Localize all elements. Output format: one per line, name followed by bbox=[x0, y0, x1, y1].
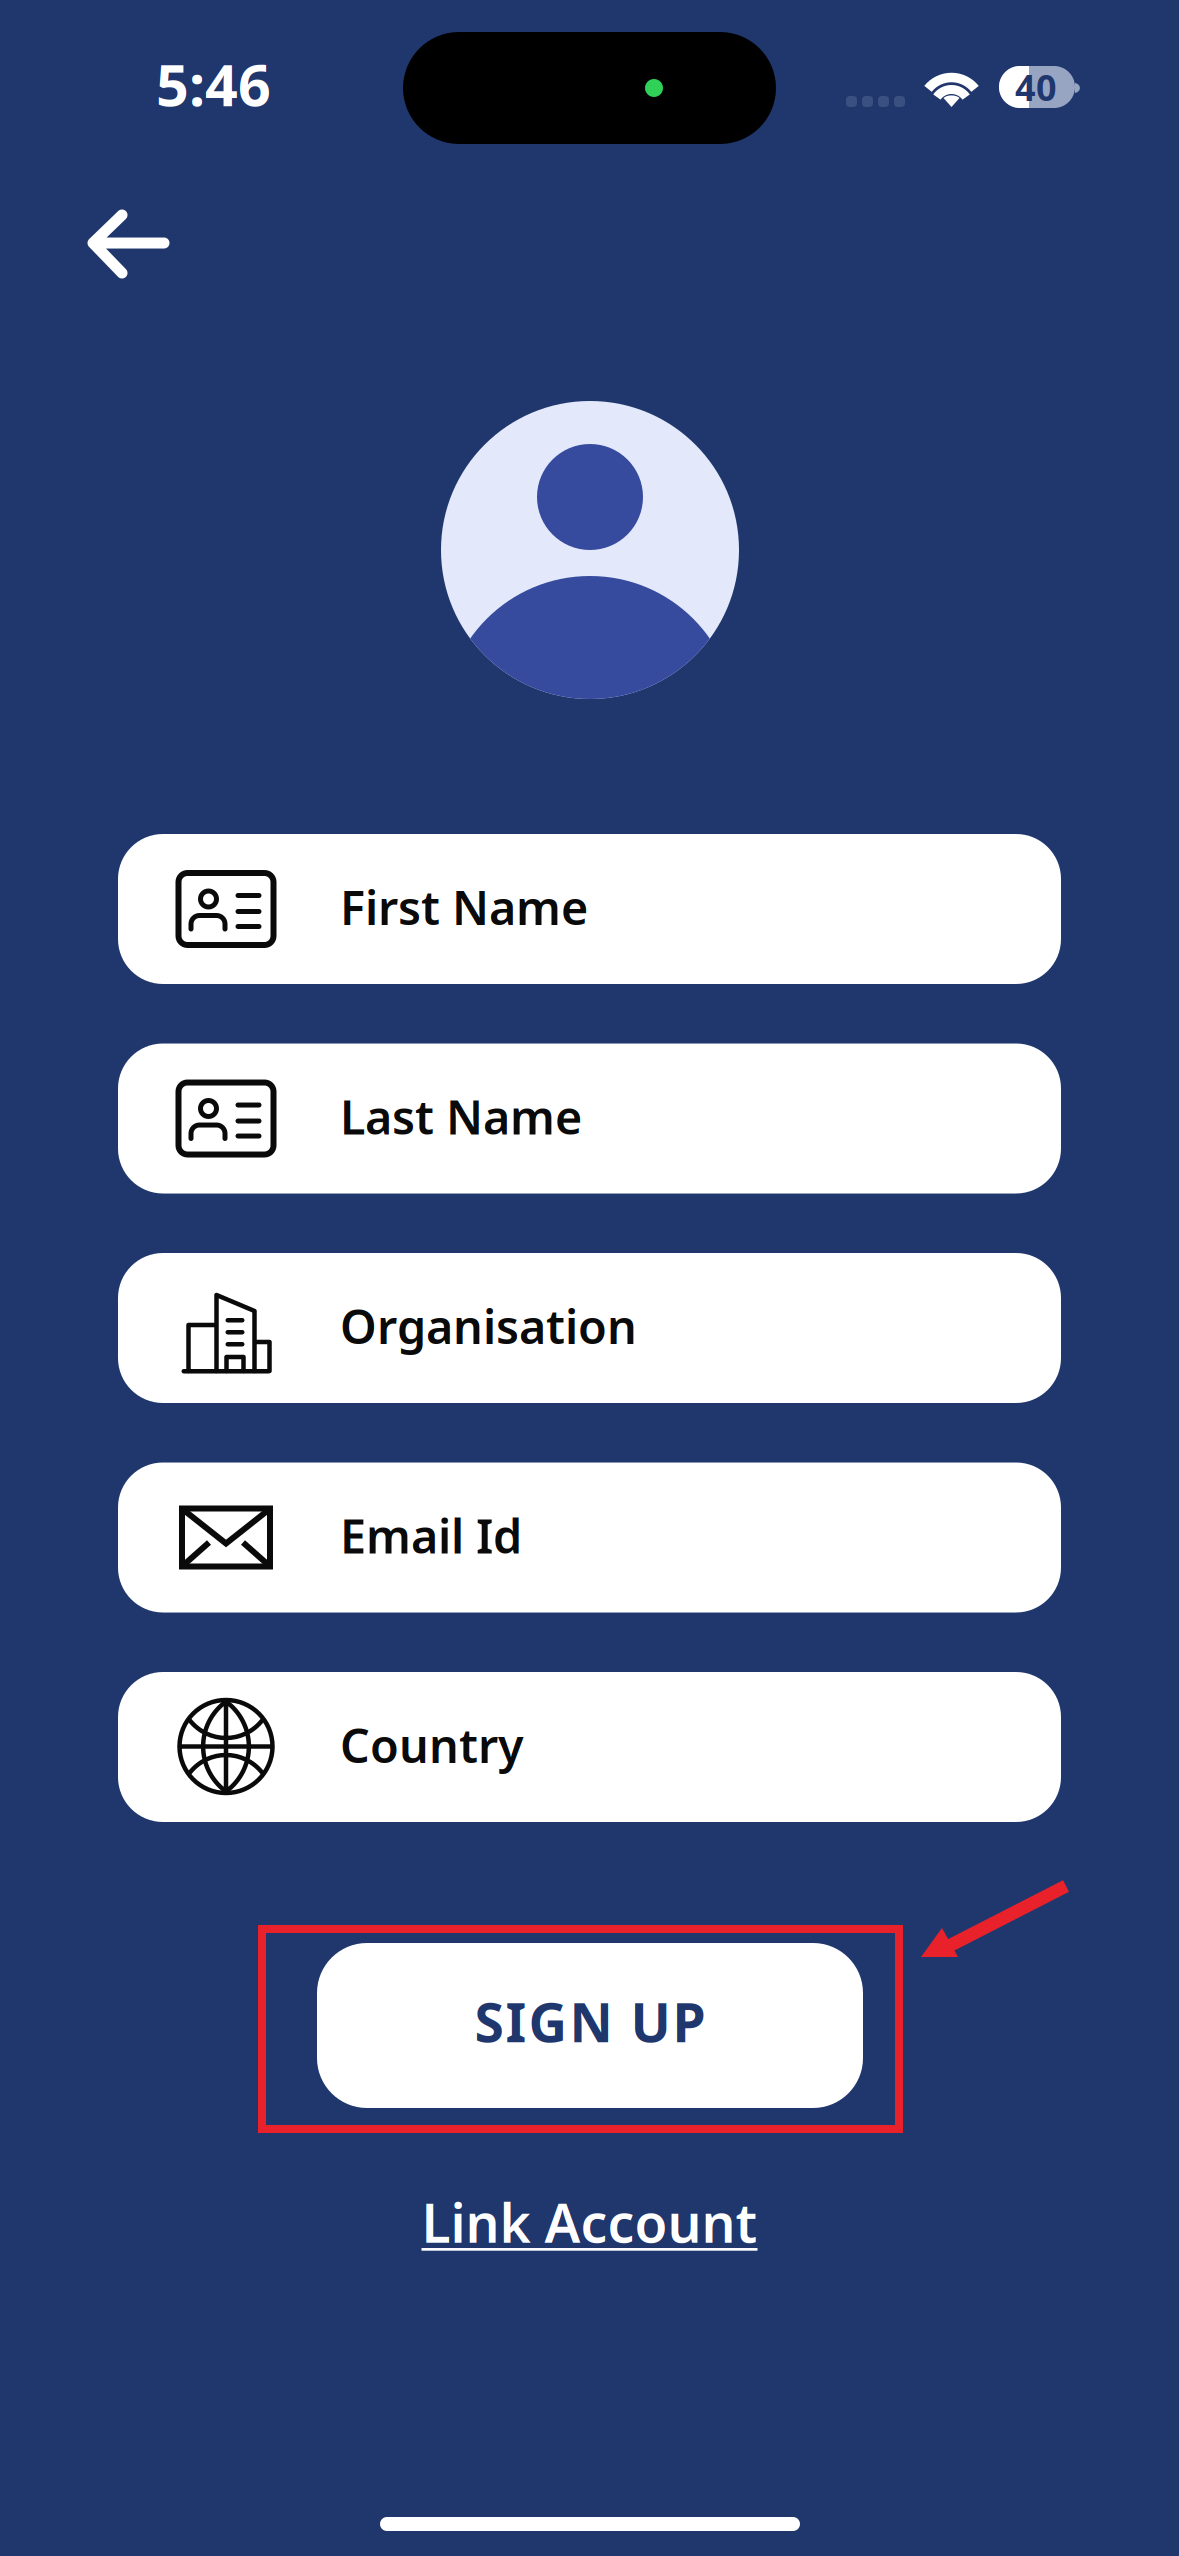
staticText: SIGN UP bbox=[474, 1986, 705, 2057]
button[interactable]: Organisation bbox=[118, 1253, 1061, 1403]
button[interactable]: Last Name bbox=[118, 1043, 1061, 1193]
staticText: 5:46 bbox=[156, 46, 271, 122]
staticText: 40 bbox=[1015, 63, 1057, 111]
staticText: Link Account bbox=[421, 2187, 757, 2257]
button[interactable]: First Name bbox=[118, 834, 1061, 984]
button[interactable]: Country bbox=[118, 1672, 1061, 1822]
staticText: Email Id bbox=[340, 1504, 522, 1566]
button[interactable]: Email Id bbox=[118, 1462, 1061, 1612]
button[interactable]: SIGN UP bbox=[317, 1943, 863, 2108]
staticText: First Name bbox=[340, 876, 588, 938]
staticText: Organisation bbox=[340, 1295, 637, 1357]
button[interactable]: Back bbox=[70, 195, 190, 295]
staticText: Country bbox=[340, 1714, 524, 1776]
staticText: Last Name bbox=[340, 1085, 582, 1147]
button[interactable]: Link Account bbox=[0, 2182, 1179, 2262]
